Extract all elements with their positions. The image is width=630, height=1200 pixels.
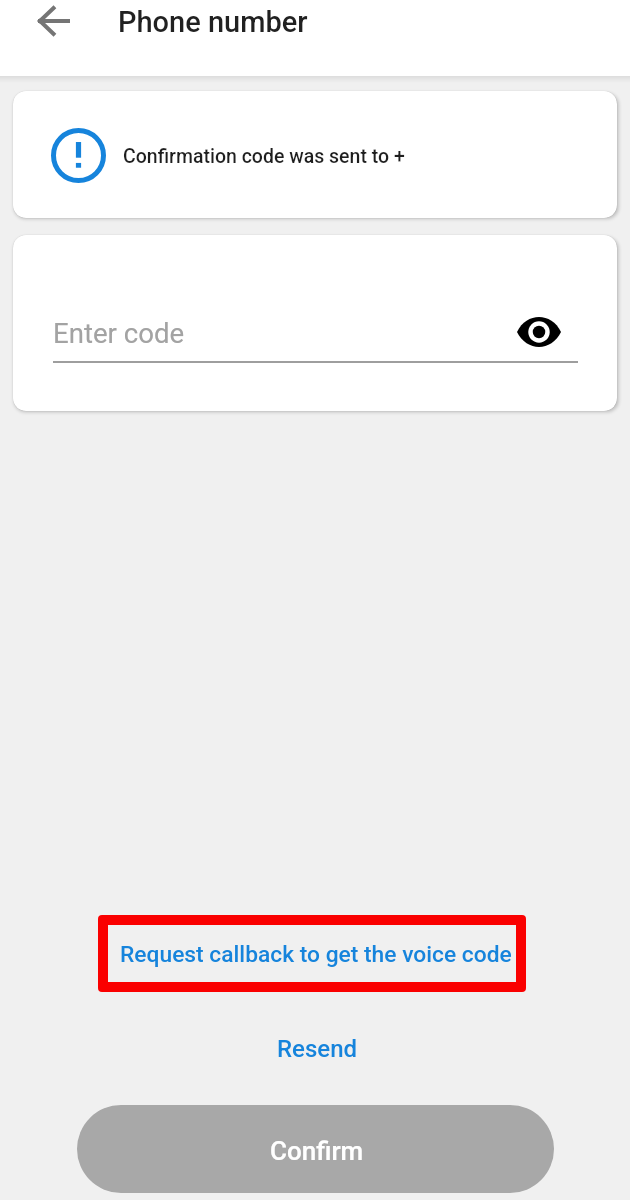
staticText: Confirm <box>270 1136 364 1166</box>
staticText: Request callback to get the voice code <box>120 941 512 968</box>
button[interactable]: Confirm <box>77 1105 554 1193</box>
button[interactable]: Back <box>30 0 78 42</box>
staticText: Resend <box>277 1035 358 1063</box>
staticText: Enter code <box>53 317 185 349</box>
button[interactable]: Resend <box>264 1023 370 1075</box>
staticText: Phone number <box>118 5 308 39</box>
staticText: Confirmation code was sent to + <box>123 145 405 168</box>
button[interactable]: Enter code <box>53 305 493 363</box>
button[interactable]: Show code <box>516 309 562 355</box>
button[interactable]: Request callback to get the voice code <box>98 915 526 992</box>
